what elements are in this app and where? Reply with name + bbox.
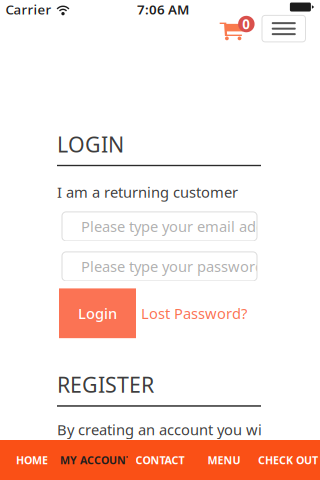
staticText: MY ACCOUNT: [60, 453, 132, 467]
staticText: REGISTER: [57, 370, 154, 399]
staticText: 7:06 AM: [137, 0, 189, 18]
button[interactable]: Menu: [262, 15, 305, 42]
button[interactable]: CONTACT: [128, 440, 192, 480]
staticText: I am a returning customer: [57, 182, 238, 202]
staticText: By creating an account you will be able …: [57, 420, 320, 439]
button[interactable]: MENU: [192, 440, 256, 480]
staticText: Carrier: [5, 0, 51, 18]
button[interactable]: Lost Password?: [136, 288, 253, 338]
button[interactable]: HOME: [0, 440, 64, 480]
button[interactable]: CHECK OUT: [256, 440, 320, 480]
staticText: Please type your email address: [81, 217, 293, 236]
staticText: Login: [78, 304, 117, 323]
staticText: MENU: [207, 453, 240, 467]
staticText: HOME: [16, 453, 48, 467]
staticText: CHECK OUT: [258, 453, 318, 467]
staticText: LOGIN: [57, 130, 124, 158]
staticText: 0: [242, 15, 250, 33]
staticText: CONTACT: [135, 453, 184, 467]
button[interactable]: MY ACCOUNT: [64, 440, 128, 480]
button[interactable]: Login: [59, 288, 136, 338]
staticText: Lost Password?: [141, 304, 247, 323]
staticText: Please type your password: [81, 257, 264, 276]
button[interactable]: Shopping cart, 0 items: [220, 20, 256, 47]
